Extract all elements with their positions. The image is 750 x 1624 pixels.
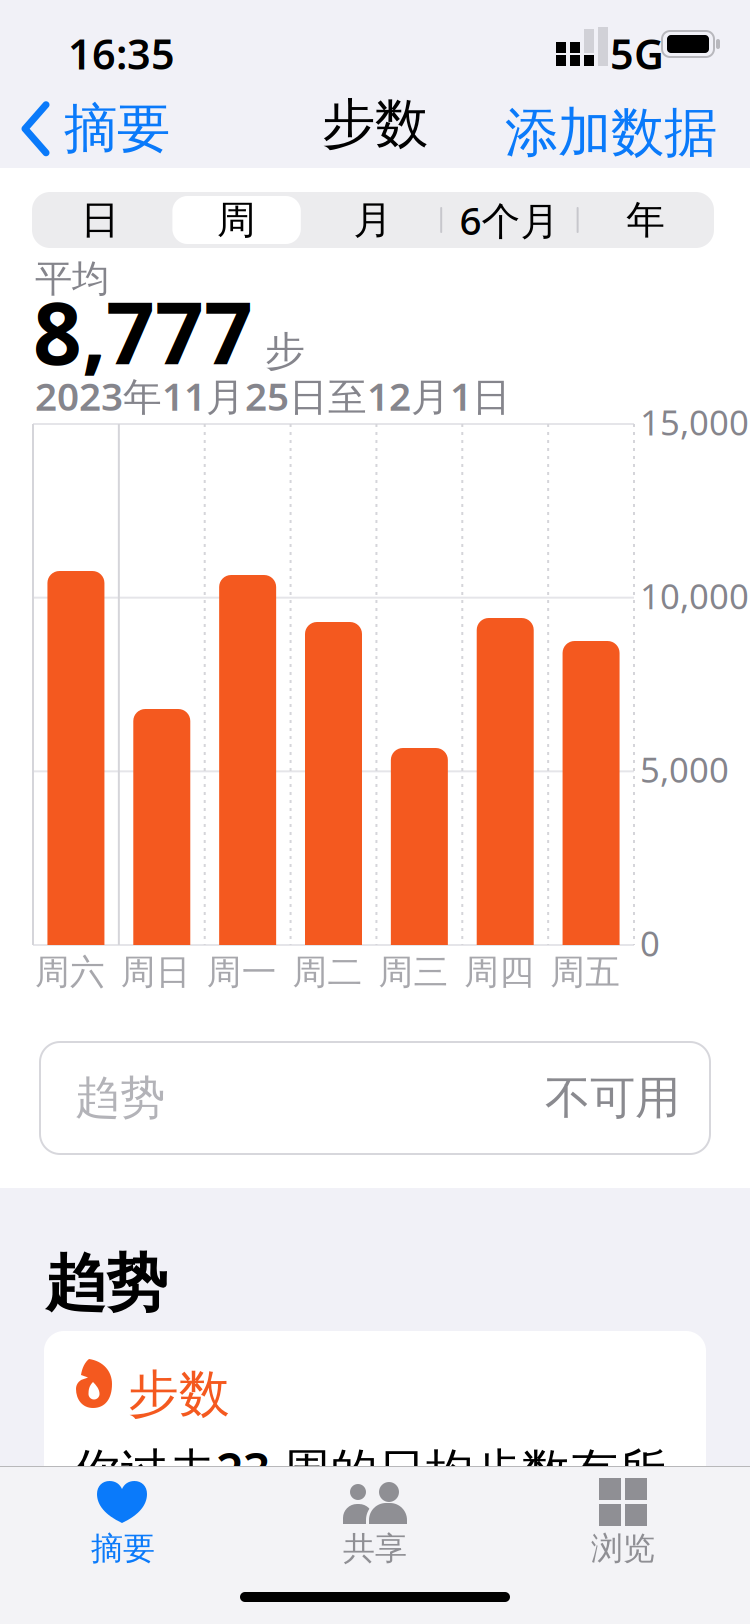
staticText: 周二 [293, 951, 363, 994]
button[interactable]: 摘要 [22, 96, 170, 161]
button[interactable] [172, 196, 301, 244]
staticText: 5,000 [640, 746, 729, 792]
button[interactable]: 周 [168, 192, 305, 248]
button[interactable]: 摘要 [43, 1478, 203, 1568]
button[interactable]: 月 [305, 192, 441, 248]
staticText: 周六 [35, 951, 105, 994]
button[interactable]: 日 [32, 192, 168, 248]
staticText: 趋势 [75, 1070, 165, 1126]
button[interactable]: 共享 [295, 1478, 455, 1568]
staticText: 周一 [207, 951, 277, 994]
staticText: 摘要 [64, 96, 170, 161]
button[interactable]: 添加数据 [505, 100, 717, 165]
button[interactable]: 步数 [44, 1331, 706, 1571]
staticText: 周 [217, 196, 256, 244]
staticText: 16:35 [68, 26, 175, 81]
staticText: 日 [81, 196, 120, 244]
staticText: 共享 [343, 1529, 407, 1568]
staticText: 周日 [121, 951, 191, 994]
staticText: 2023年11月25日至12月1日 [35, 370, 511, 421]
staticText: 15,000 [640, 399, 749, 445]
staticText: 10,000 [640, 573, 749, 619]
staticText: 8,777 [33, 275, 253, 388]
staticText: 月 [353, 196, 392, 244]
staticText: 年 [626, 196, 665, 244]
staticText: 浏览 [591, 1529, 655, 1568]
staticText: 平均 [35, 256, 109, 302]
staticText: 不可用 [545, 1070, 680, 1126]
staticText: 步数 [322, 91, 428, 157]
button[interactable]: 浏览 [543, 1478, 703, 1568]
button[interactable]: 趋势 [40, 1042, 710, 1154]
staticText: 步 [265, 327, 305, 376]
staticText: 5G [610, 26, 664, 81]
staticText: 0 [640, 920, 660, 966]
staticText: 添加数据 [505, 100, 717, 165]
staticText: 6个月 [459, 194, 559, 246]
staticText: 步数 [128, 1363, 230, 1425]
button[interactable]: 6个月 [441, 192, 578, 248]
staticText: 周五 [550, 951, 620, 994]
staticText: 你过去23 周的日均步数有所 [72, 1438, 666, 1502]
staticText: 趋势 [45, 1246, 167, 1321]
staticText: 摘要 [91, 1529, 155, 1568]
button[interactable]: 年 [578, 192, 714, 248]
staticText: 周四 [464, 951, 534, 994]
staticText: 周三 [378, 951, 448, 994]
